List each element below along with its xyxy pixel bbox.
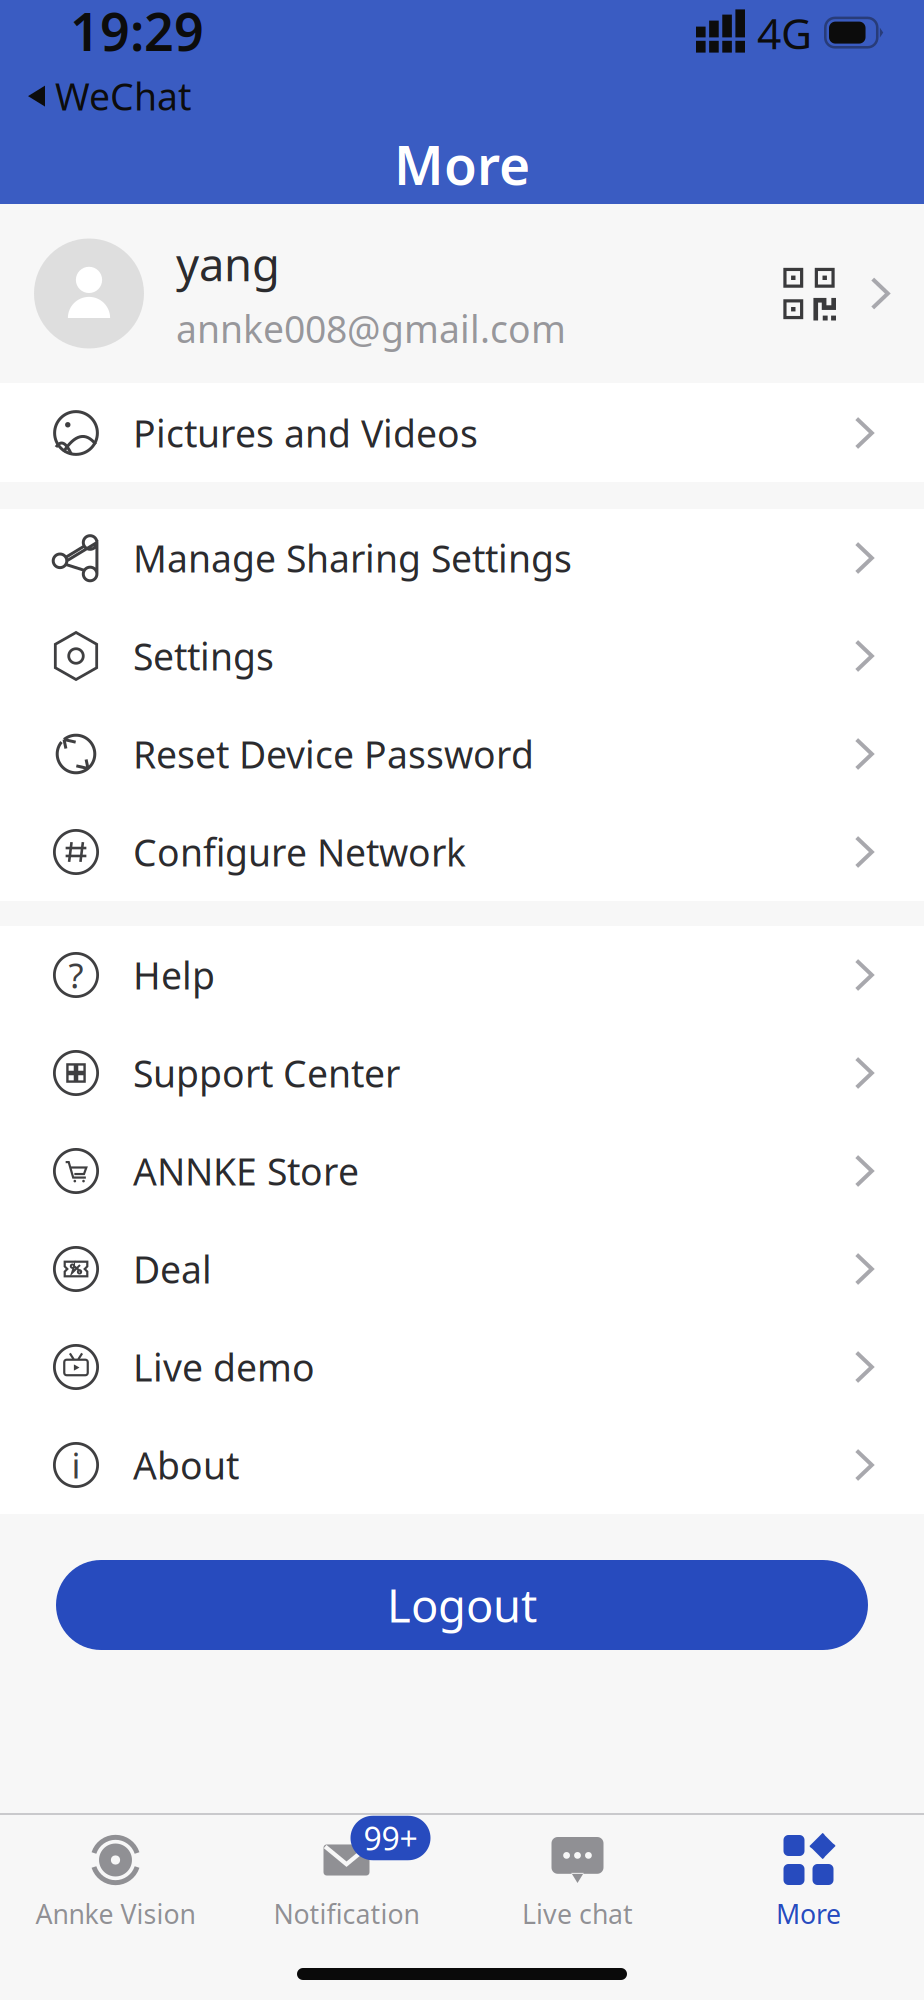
staticText: Settings bbox=[133, 631, 274, 681]
staticText: 19:29 bbox=[70, 0, 204, 65]
staticText: Pictures and Videos bbox=[133, 408, 478, 458]
button[interactable]: ANNKE Store bbox=[0, 1122, 924, 1220]
staticText: Manage Sharing Settings bbox=[133, 533, 572, 583]
button[interactable]: Pictures and Videos bbox=[0, 384, 924, 482]
button[interactable]: i bbox=[0, 1416, 924, 1514]
staticText: About bbox=[133, 1440, 239, 1490]
staticText: Annke Vision bbox=[35, 1896, 195, 1931]
staticText: Deal bbox=[133, 1244, 212, 1294]
button[interactable]: Annke Vision bbox=[0, 1833, 231, 1931]
button[interactable]: Deal bbox=[0, 1220, 924, 1318]
button[interactable]: More bbox=[693, 1833, 924, 1931]
staticText: Logout bbox=[387, 1575, 537, 1635]
button[interactable]: Live chat bbox=[462, 1833, 693, 1931]
staticText: Help bbox=[133, 950, 215, 1000]
button[interactable]: Live demo bbox=[0, 1318, 924, 1416]
staticText: Configure Network bbox=[133, 827, 466, 877]
staticText: 4G bbox=[757, 4, 812, 61]
staticText: Reset Device Password bbox=[133, 729, 534, 779]
button[interactable]: Reset Device Password bbox=[0, 705, 924, 803]
button[interactable]: Logout bbox=[56, 1560, 868, 1650]
staticText: More bbox=[394, 129, 530, 200]
button[interactable]: Manage Sharing Settings bbox=[0, 509, 924, 607]
staticText: More bbox=[776, 1896, 841, 1931]
button[interactable]: Support Center bbox=[0, 1024, 924, 1122]
button[interactable]: yang bbox=[0, 204, 924, 383]
staticText: yang bbox=[176, 234, 280, 294]
staticText: WeChat bbox=[55, 71, 191, 121]
button[interactable]: Settings bbox=[0, 607, 924, 705]
button[interactable]: Configure Network bbox=[0, 803, 924, 901]
staticText: 99+ bbox=[363, 1817, 417, 1859]
staticText: Live demo bbox=[133, 1342, 315, 1392]
button[interactable]: 99+ bbox=[231, 1833, 462, 1931]
staticText: ANNKE Store bbox=[133, 1146, 359, 1196]
staticText: annke008@gmail.com bbox=[176, 304, 566, 353]
staticText: Notification bbox=[273, 1896, 419, 1931]
staticText: Support Center bbox=[133, 1048, 400, 1098]
button[interactable]: ? bbox=[0, 926, 924, 1024]
staticText: i bbox=[71, 1442, 80, 1488]
staticText: ? bbox=[68, 952, 83, 998]
staticText: Live chat bbox=[522, 1896, 633, 1931]
